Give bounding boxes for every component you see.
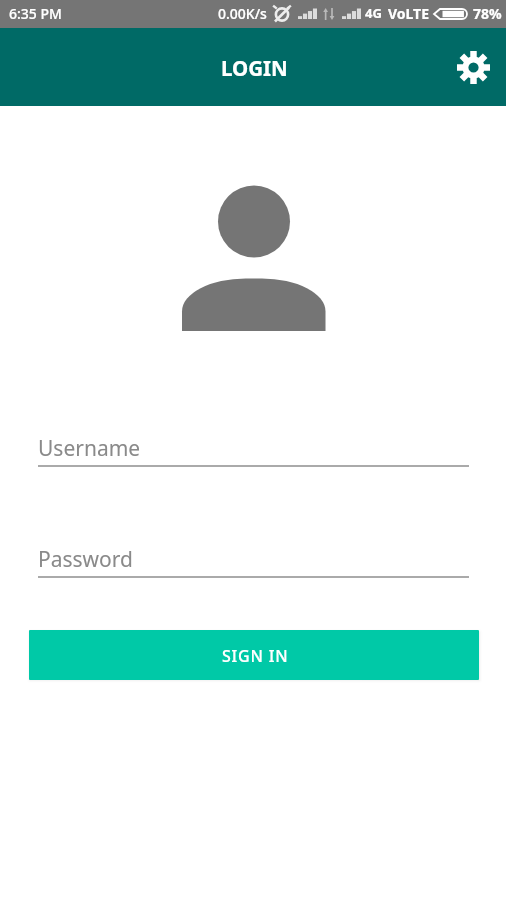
staticText: Username — [38, 434, 141, 463]
staticText: 6:35 PM — [9, 4, 62, 23]
button[interactable]: SIGN IN — [29, 630, 479, 680]
staticText: SIGN IN — [222, 645, 289, 667]
staticText: VoLTE — [388, 4, 430, 23]
button[interactable]: Username — [38, 434, 469, 467]
button[interactable]: Password — [38, 545, 469, 578]
staticText: 78% — [473, 4, 502, 23]
staticText: 4G — [365, 4, 382, 22]
staticText: 0.00K/s — [218, 4, 267, 23]
button[interactable]: Settings — [449, 43, 497, 91]
staticText: Password — [38, 545, 133, 574]
staticText: LOGIN — [221, 54, 288, 82]
